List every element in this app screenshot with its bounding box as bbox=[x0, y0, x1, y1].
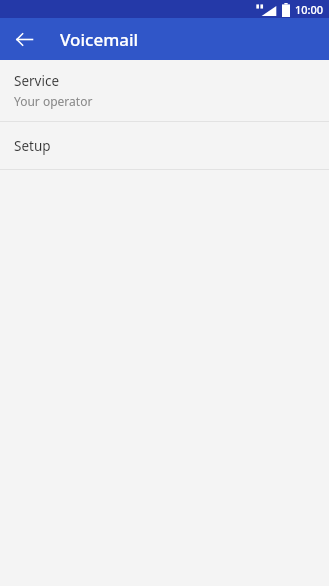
button[interactable]: Service bbox=[0, 60, 329, 121]
staticText: Your operator bbox=[14, 93, 93, 109]
staticText: Service bbox=[14, 72, 60, 90]
staticText: Setup bbox=[14, 137, 51, 155]
staticText: Voicemail bbox=[60, 28, 139, 51]
staticText: 10:00 bbox=[295, 2, 324, 17]
button[interactable]: Setup bbox=[0, 122, 329, 169]
button[interactable]: Back bbox=[8, 23, 40, 55]
